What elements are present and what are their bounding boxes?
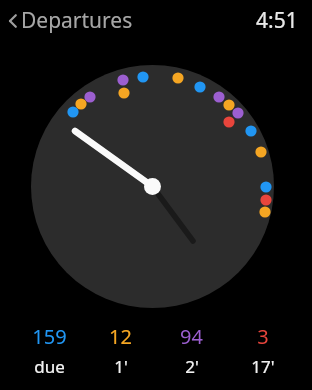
- button[interactable]: Departure dial: [0, 0, 312, 390]
- staticText: Departures: [21, 6, 133, 35]
- staticText: 94: [180, 323, 203, 350]
- staticText: 17': [251, 355, 275, 378]
- staticText: 2': [185, 355, 199, 378]
- staticText: 1': [114, 355, 128, 378]
- button[interactable]: 159: [14, 323, 85, 378]
- button[interactable]: Back to Departures: [4, 6, 137, 35]
- button[interactable]: 94: [156, 323, 227, 378]
- staticText: 4:51: [256, 6, 298, 35]
- button[interactable]: 3: [227, 323, 298, 378]
- staticText: 3: [257, 323, 269, 350]
- button[interactable]: 12: [85, 323, 156, 378]
- staticText: 12: [109, 323, 132, 350]
- staticText: 159: [32, 323, 67, 350]
- staticText: due: [34, 355, 65, 378]
